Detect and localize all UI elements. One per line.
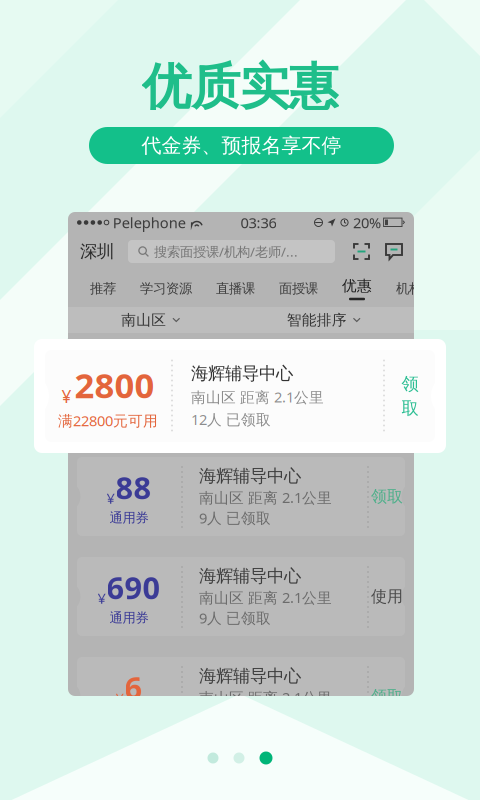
staticText: 代金券、预报名享不停 — [141, 133, 341, 158]
staticText: ¥ — [106, 488, 114, 508]
staticText: 20% — [349, 213, 381, 232]
staticText: ¥ — [115, 688, 123, 708]
staticText: 优惠 — [342, 277, 372, 295]
staticText: 南山区 距离 2.1公里 — [191, 387, 324, 407]
staticText: 海辉辅导中心 — [191, 363, 293, 384]
staticText: 9人 已领取 — [199, 508, 271, 528]
button[interactable]: ¥ — [77, 657, 405, 736]
staticText: 领 — [401, 373, 418, 394]
button[interactable]: ¥ — [45, 350, 435, 442]
staticText: 优质实惠 — [142, 57, 338, 117]
staticText: 使用 — [371, 587, 403, 606]
staticText: 学习资源 — [140, 280, 192, 297]
staticText: 机构 — [396, 280, 422, 297]
staticText: 2800 — [74, 362, 154, 408]
staticText: 智能排序 — [287, 311, 347, 329]
staticText: 6 — [124, 667, 142, 708]
staticText: 南山区 距离 2.1公里 — [199, 488, 332, 507]
staticText: 690 — [106, 567, 160, 608]
staticText: 通用券 — [109, 510, 148, 526]
staticText: 取 — [401, 397, 418, 419]
staticText: 领取 — [371, 487, 403, 506]
staticText: 9人 已领取 — [199, 708, 271, 728]
staticText: 满22800元可用 — [58, 411, 158, 430]
staticText: 南山区 — [121, 311, 166, 329]
staticText: 搜索面授课/机构/老师/... — [154, 243, 298, 260]
button[interactable]: ¥ — [77, 457, 405, 536]
button[interactable]: ¥ — [77, 557, 405, 636]
staticText: 直播课 — [216, 280, 255, 297]
staticText: 南山区 距离 2.1公里 — [199, 688, 332, 707]
staticText: 海辉辅导中心 — [199, 565, 301, 587]
staticText: 领取 — [371, 687, 403, 706]
staticText: 面授课 — [279, 280, 318, 297]
staticText: 推荐 — [90, 280, 116, 297]
staticText: 海辉辅导中心 — [199, 665, 301, 687]
staticText: 12人 已领取 — [191, 410, 271, 429]
staticText: 03:36 — [240, 213, 276, 232]
staticText: 通用券 — [109, 610, 148, 626]
button[interactable]: 代金券、预报名享不停 — [89, 127, 394, 164]
staticText: ¥ — [97, 588, 105, 608]
staticText: Pelephone — [109, 213, 186, 232]
staticText: 南山区 距离 2.1公里 — [199, 588, 332, 607]
staticText: 9人 已领取 — [199, 608, 271, 628]
staticText: 海辉辅导中心 — [199, 465, 301, 487]
staticText: ¥ — [61, 385, 71, 408]
staticText: 深圳 — [80, 241, 114, 262]
staticText: 88 — [115, 467, 151, 508]
